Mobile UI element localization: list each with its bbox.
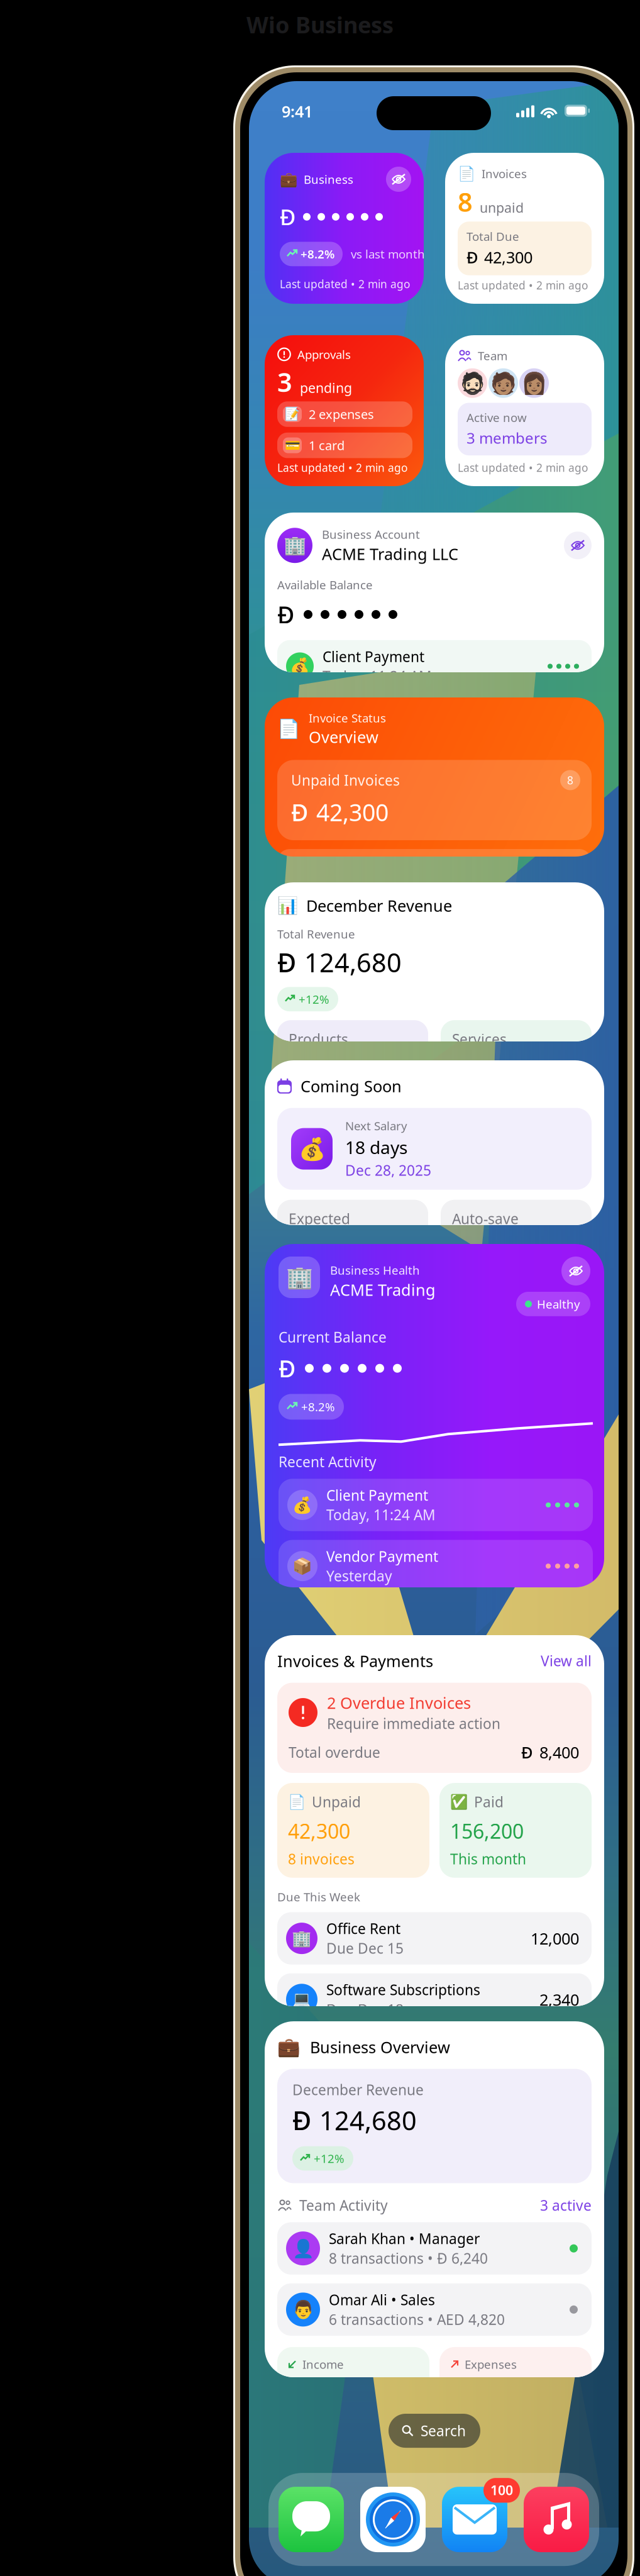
staticText: Ð xyxy=(280,202,295,231)
staticText: 💼 xyxy=(280,171,297,187)
staticText: 3 members xyxy=(466,428,547,448)
staticText: 🏢 xyxy=(292,1929,312,1947)
staticText: 👨 xyxy=(292,2299,314,2320)
button[interactable]: 📊 xyxy=(265,882,604,1041)
button[interactable]: Safari xyxy=(360,2487,426,2552)
staticText: 8 xyxy=(567,773,573,787)
button[interactable]: Approvals xyxy=(265,335,424,486)
staticText: 2 expenses xyxy=(309,406,374,423)
staticText: 3 active xyxy=(540,2196,592,2215)
button[interactable]: Music xyxy=(524,2487,589,2552)
button[interactable]: Messages xyxy=(279,2487,344,2552)
staticText: Dec 28, 2025 xyxy=(345,1161,431,1180)
staticText: 18 days xyxy=(345,1135,407,1159)
button[interactable]: 🏢 xyxy=(265,513,604,672)
staticText: 📄 xyxy=(277,718,301,739)
staticText: Business Overview xyxy=(310,2036,450,2058)
staticText: Due Dec 15 xyxy=(326,1939,404,1958)
staticText: 📄 xyxy=(288,1794,306,1810)
staticText: Services xyxy=(452,1030,507,1049)
staticText: Total Revenue xyxy=(277,926,355,942)
staticText: Total Due xyxy=(466,228,519,244)
staticText: Yesterday xyxy=(326,1566,392,1585)
staticText: Auto-save xyxy=(452,1209,519,1228)
staticText: Due This Week xyxy=(277,1889,360,1905)
staticText: Overview xyxy=(309,726,378,747)
staticText: +142,200 xyxy=(288,2378,368,2403)
staticText: Ð xyxy=(277,599,294,630)
staticText: Today, 11:24 AM xyxy=(323,667,432,686)
staticText: vs last month xyxy=(351,246,425,262)
staticText: Approvals xyxy=(297,347,351,362)
staticText: 🧔🏻 xyxy=(459,371,486,395)
staticText: Ð xyxy=(279,1353,295,1384)
staticText: Last updated • 2 min ago xyxy=(277,460,407,475)
button[interactable]: Mail xyxy=(442,2487,507,2552)
staticText: Expected xyxy=(289,1209,350,1228)
staticText: Current Balance xyxy=(279,1327,387,1346)
staticText: Products xyxy=(289,1030,348,1049)
staticText: Unpaid xyxy=(312,1792,361,1811)
staticText: Invoices xyxy=(482,166,527,181)
staticText: 📄 xyxy=(458,165,475,182)
staticText: Search xyxy=(421,2421,466,2440)
staticText: Last updated • 2 min ago xyxy=(458,460,588,475)
staticText: 124,680 xyxy=(319,2103,417,2137)
staticText: ACME Trading LLC xyxy=(322,543,458,564)
button[interactable]: View all xyxy=(541,1651,592,1670)
staticText: Recent Activity xyxy=(279,1452,377,1471)
staticText: Require immediate action xyxy=(327,1714,500,1733)
staticText: +8.2% xyxy=(301,1399,335,1415)
staticText: Client Payment xyxy=(323,647,424,666)
staticText: +12% xyxy=(299,991,329,1007)
staticText: 3 xyxy=(277,365,292,399)
button[interactable]: 📄 xyxy=(445,153,604,304)
staticText: 💻 xyxy=(292,1990,312,2009)
staticText: 💳 xyxy=(284,438,300,453)
staticText: 8 xyxy=(458,184,473,219)
button[interactable]: Coming Soon xyxy=(265,1060,604,1225)
staticText: 2 Overdue Invoices xyxy=(327,1692,471,1713)
staticText: December Revenue xyxy=(292,2080,424,2099)
staticText: Business Health xyxy=(330,1262,420,1278)
staticText: +8.2% xyxy=(301,246,334,262)
staticText: 42,300 xyxy=(316,796,389,828)
staticText: Business xyxy=(304,171,353,187)
staticText: 👩🏽 xyxy=(521,371,547,395)
button[interactable]: 🏢 xyxy=(265,1244,604,1587)
staticText: Expenses xyxy=(465,2356,517,2372)
button[interactable]: Team xyxy=(445,335,604,486)
staticText: 6 transactions • AED 4,820 xyxy=(329,2310,505,2329)
button[interactable]: 💼 xyxy=(265,153,424,304)
staticText: Office Rent xyxy=(326,1919,400,1938)
staticText: Active now xyxy=(466,410,527,425)
staticText: Next Salary xyxy=(345,1118,407,1134)
staticText: 42,300 xyxy=(484,247,532,268)
staticText: Business Account xyxy=(322,526,420,542)
staticText: 💰 xyxy=(292,1496,312,1514)
staticText: Coming Soon xyxy=(301,1075,402,1097)
staticText: Client Payment xyxy=(326,1486,428,1505)
staticText: pending xyxy=(300,379,352,397)
staticText: 👤 xyxy=(292,2238,314,2258)
staticText: Ð xyxy=(466,247,478,268)
staticText: Invoice Status xyxy=(309,710,386,726)
staticText: Paid xyxy=(474,1792,504,1811)
staticText: 9:41 xyxy=(282,101,312,122)
staticText: 💼 xyxy=(277,2036,301,2058)
staticText: Sarah Khan • Manager xyxy=(329,2229,480,2248)
button[interactable]: Search xyxy=(389,2414,480,2448)
staticText: 100 xyxy=(490,2481,513,2499)
staticText: 8 invoices xyxy=(288,1849,355,1868)
staticText: Ð xyxy=(292,2103,311,2137)
button[interactable]: 📄 xyxy=(265,697,604,857)
staticText: 🧑🏽 xyxy=(490,371,516,395)
staticText: 🏢 xyxy=(286,1265,313,1290)
staticText: Wio Business xyxy=(246,9,394,40)
staticText: 42,300 xyxy=(288,1818,350,1844)
staticText: 🏢 xyxy=(283,535,306,556)
staticText: Today, 11:24 AM xyxy=(326,1505,436,1524)
staticText: 💰 xyxy=(298,1136,325,1161)
staticText: 8 transactions • Ð 6,240 xyxy=(329,2249,488,2268)
